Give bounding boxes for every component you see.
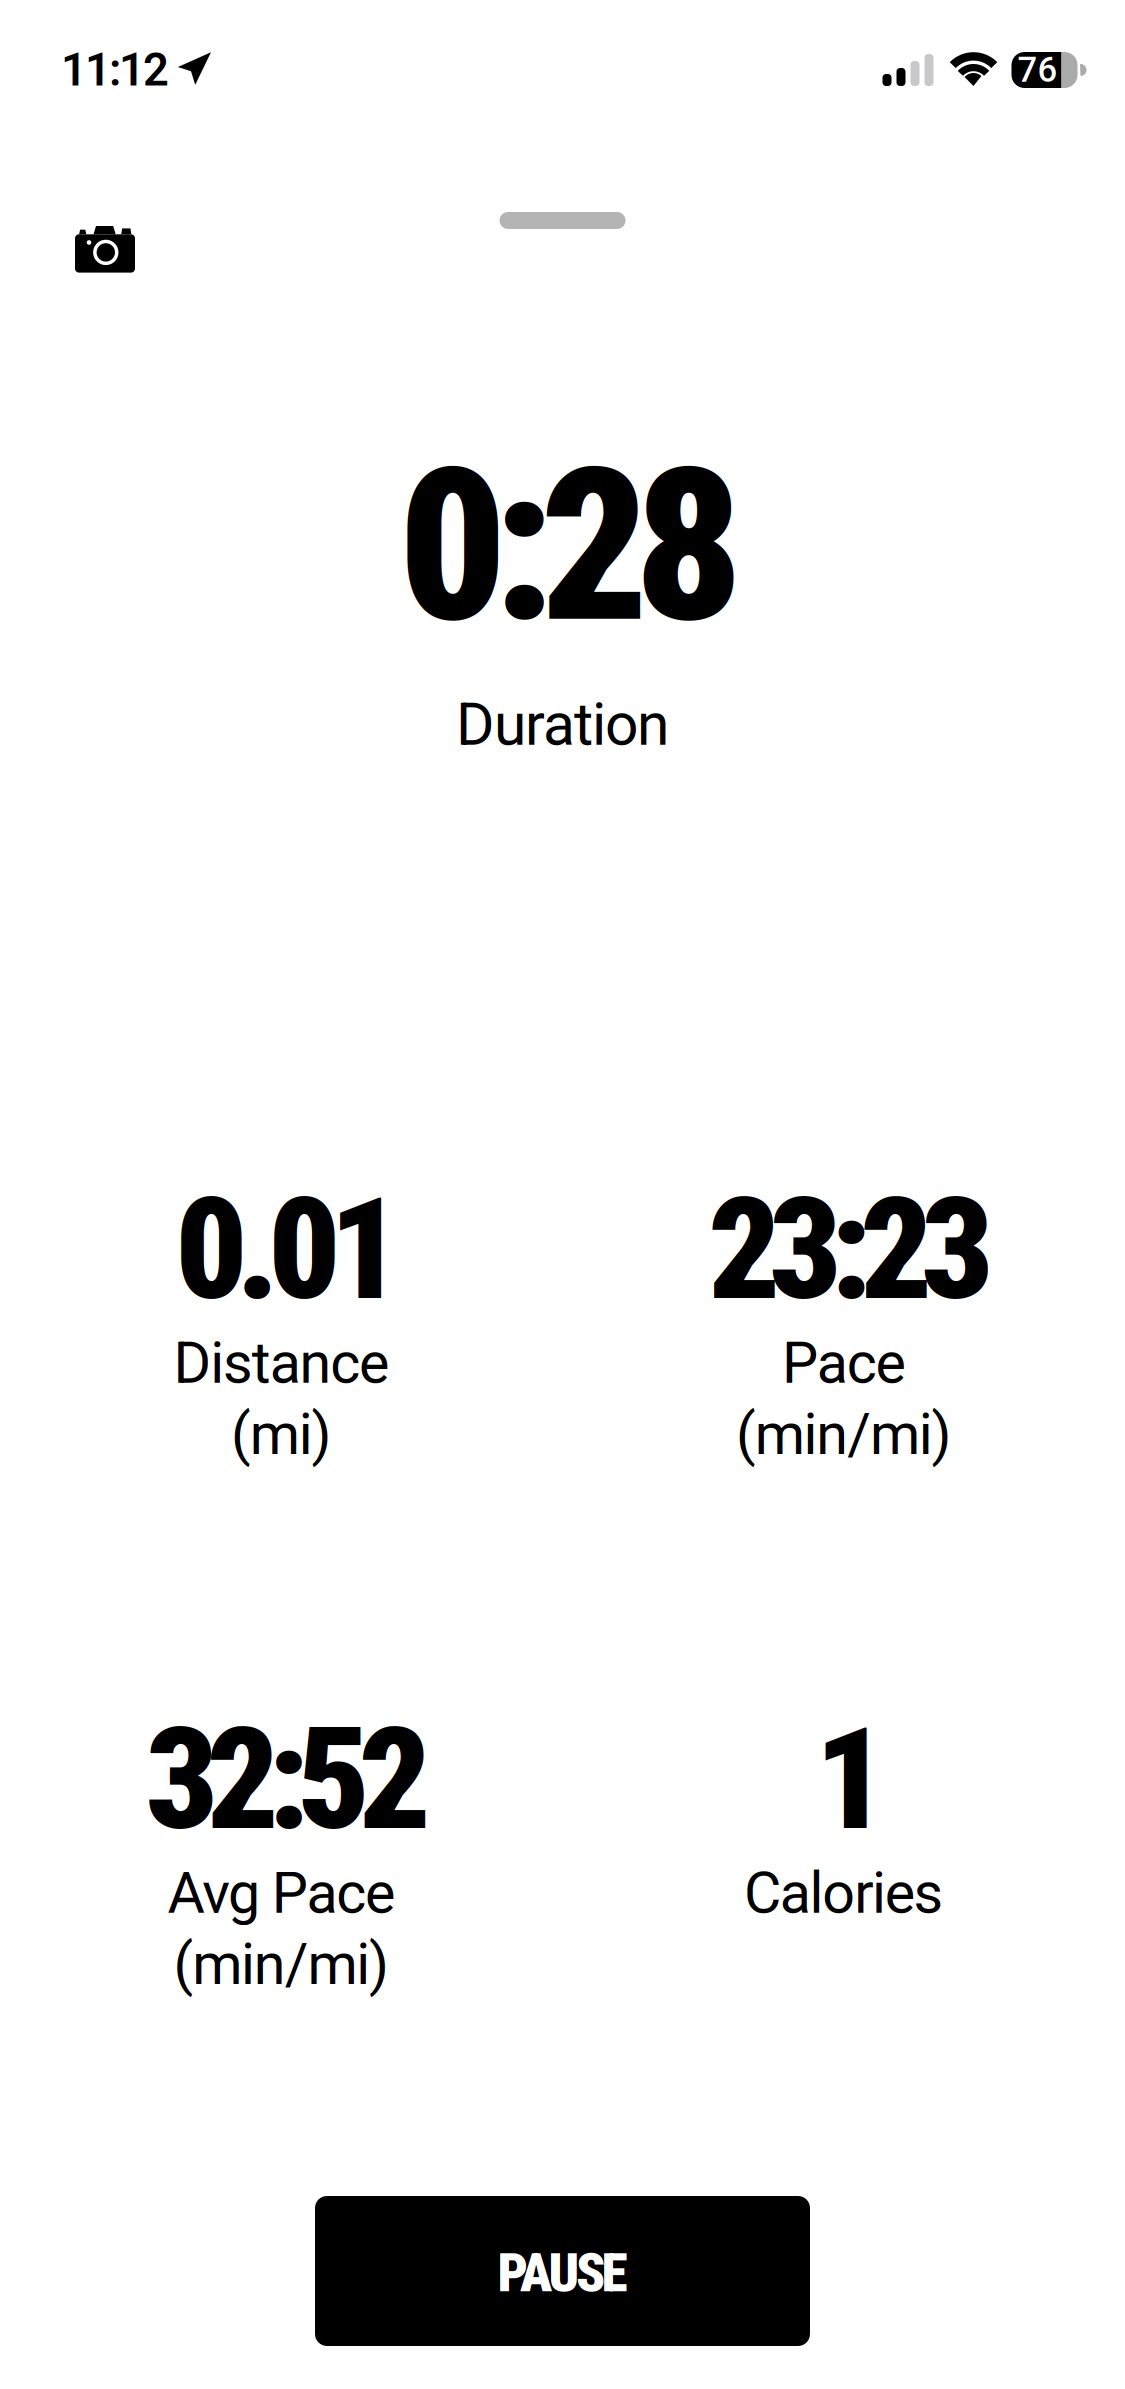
button[interactable]: Camera	[55, 206, 155, 293]
staticText: (mi)	[231, 1401, 331, 1468]
button[interactable]: PAUSE	[315, 2196, 810, 2346]
staticText: Pace	[782, 1330, 905, 1397]
staticText: (min/mi)	[736, 1401, 952, 1468]
staticText: 0:28	[398, 422, 742, 670]
staticText: 11:12	[61, 43, 169, 96]
staticText: Avg Pace	[167, 1860, 395, 1927]
staticText: PAUSE	[497, 2242, 627, 2304]
staticText: 1	[815, 1697, 887, 1863]
staticText: 0.01	[175, 1167, 401, 1333]
staticText: 23:23	[708, 1167, 993, 1333]
staticText: 76	[1017, 50, 1057, 90]
staticText: Distance	[173, 1330, 389, 1397]
staticText: 32:52	[146, 1697, 431, 1863]
staticText: Calories	[744, 1860, 944, 1927]
staticText: (min/mi)	[173, 1931, 389, 1998]
staticText: Duration	[456, 690, 669, 759]
